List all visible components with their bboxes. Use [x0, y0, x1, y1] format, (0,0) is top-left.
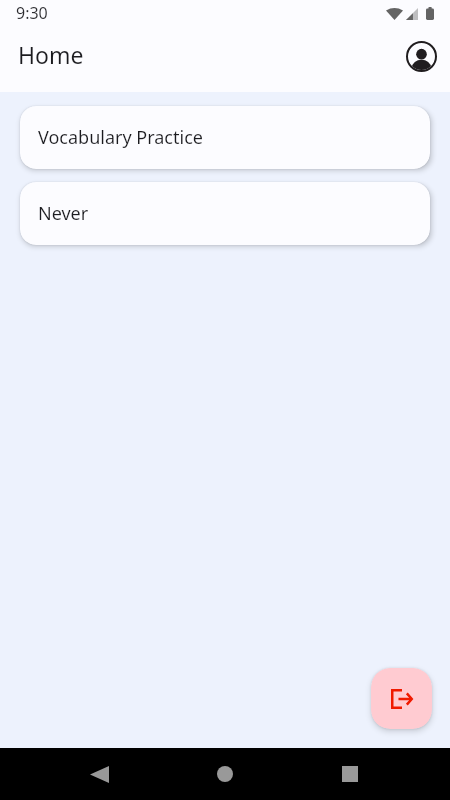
staticText: Never	[38, 201, 89, 226]
staticText: Vocabulary Practice	[38, 125, 203, 150]
button[interactable]: Back	[77, 750, 125, 798]
button[interactable]: Never	[20, 182, 430, 245]
button[interactable]: Home	[201, 750, 249, 798]
staticText: Home	[18, 39, 84, 70]
button[interactable]: Account	[399, 34, 443, 78]
button[interactable]: Recents	[326, 750, 374, 798]
button[interactable]: Logout	[371, 668, 432, 729]
staticText: 9:30	[16, 2, 48, 24]
button[interactable]: Vocabulary Practice	[20, 106, 430, 169]
